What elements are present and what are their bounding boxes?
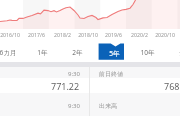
staticText: 768 — [164, 80, 180, 92]
staticText: 6カ月 — [0, 48, 17, 57]
staticText: 9:30 — [68, 70, 80, 78]
staticText: 2年 — [72, 48, 83, 57]
staticText: 9:30 — [68, 102, 80, 110]
staticText: 2016/10 — [0, 31, 20, 38]
button[interactable]: 5年 — [102, 45, 127, 62]
staticText: 2020/2 — [131, 31, 148, 38]
staticText: 出来高 — [99, 102, 117, 110]
button[interactable]: 5年 — [100, 44, 125, 61]
staticText: 771.22 — [51, 80, 80, 92]
staticText: 2019/6 — [105, 31, 122, 38]
staticText: 2017/6 — [28, 31, 45, 38]
staticText: 2018/10 — [78, 31, 98, 38]
button[interactable]: 1年 — [30, 44, 55, 61]
staticText: 5年 — [109, 49, 120, 58]
staticText: 2018/2 — [54, 31, 71, 38]
staticText: 前日終値 — [99, 70, 123, 78]
staticText: 全 — [179, 49, 180, 57]
button[interactable]: 10年 — [135, 44, 160, 61]
staticText: 10年 — [140, 48, 155, 57]
button[interactable]: 2年 — [65, 44, 90, 61]
staticText: 5年 — [107, 48, 118, 57]
button[interactable]: 6カ月 — [0, 44, 20, 61]
staticText: 1年 — [37, 48, 48, 57]
staticText: 2020/10 — [155, 31, 175, 38]
